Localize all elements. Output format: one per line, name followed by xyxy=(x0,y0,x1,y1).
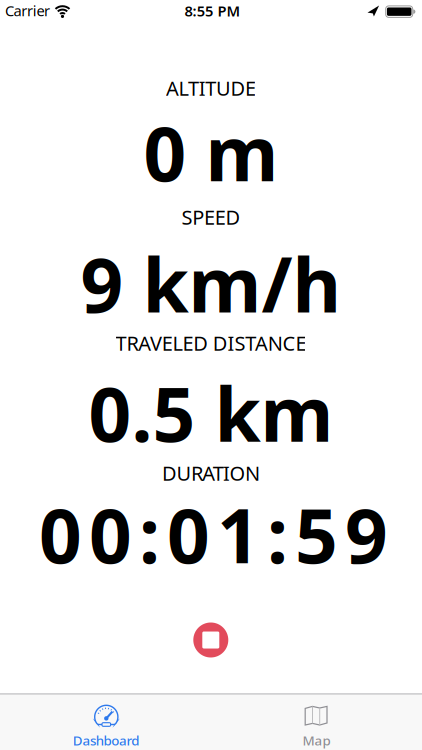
staticText: 9 km/h xyxy=(80,234,341,333)
staticText: 0 m xyxy=(143,103,278,202)
staticText: DURATION xyxy=(162,460,260,486)
staticText: Carrier xyxy=(5,1,50,20)
staticText: ALTITUDE xyxy=(166,75,256,101)
staticText: Dashboard xyxy=(73,731,139,749)
staticText: 8:55 PM xyxy=(184,1,241,21)
staticText: SPEED xyxy=(181,204,241,230)
button[interactable]: Stop xyxy=(193,622,228,657)
staticText: Map xyxy=(302,731,330,749)
staticText: TRAVELED DISTANCE xyxy=(116,330,306,356)
staticText: 0.5 km xyxy=(88,363,333,462)
staticText: 00:01:59 xyxy=(39,485,388,584)
button[interactable]: Map xyxy=(241,694,391,750)
button[interactable]: Dashboard xyxy=(30,694,180,750)
